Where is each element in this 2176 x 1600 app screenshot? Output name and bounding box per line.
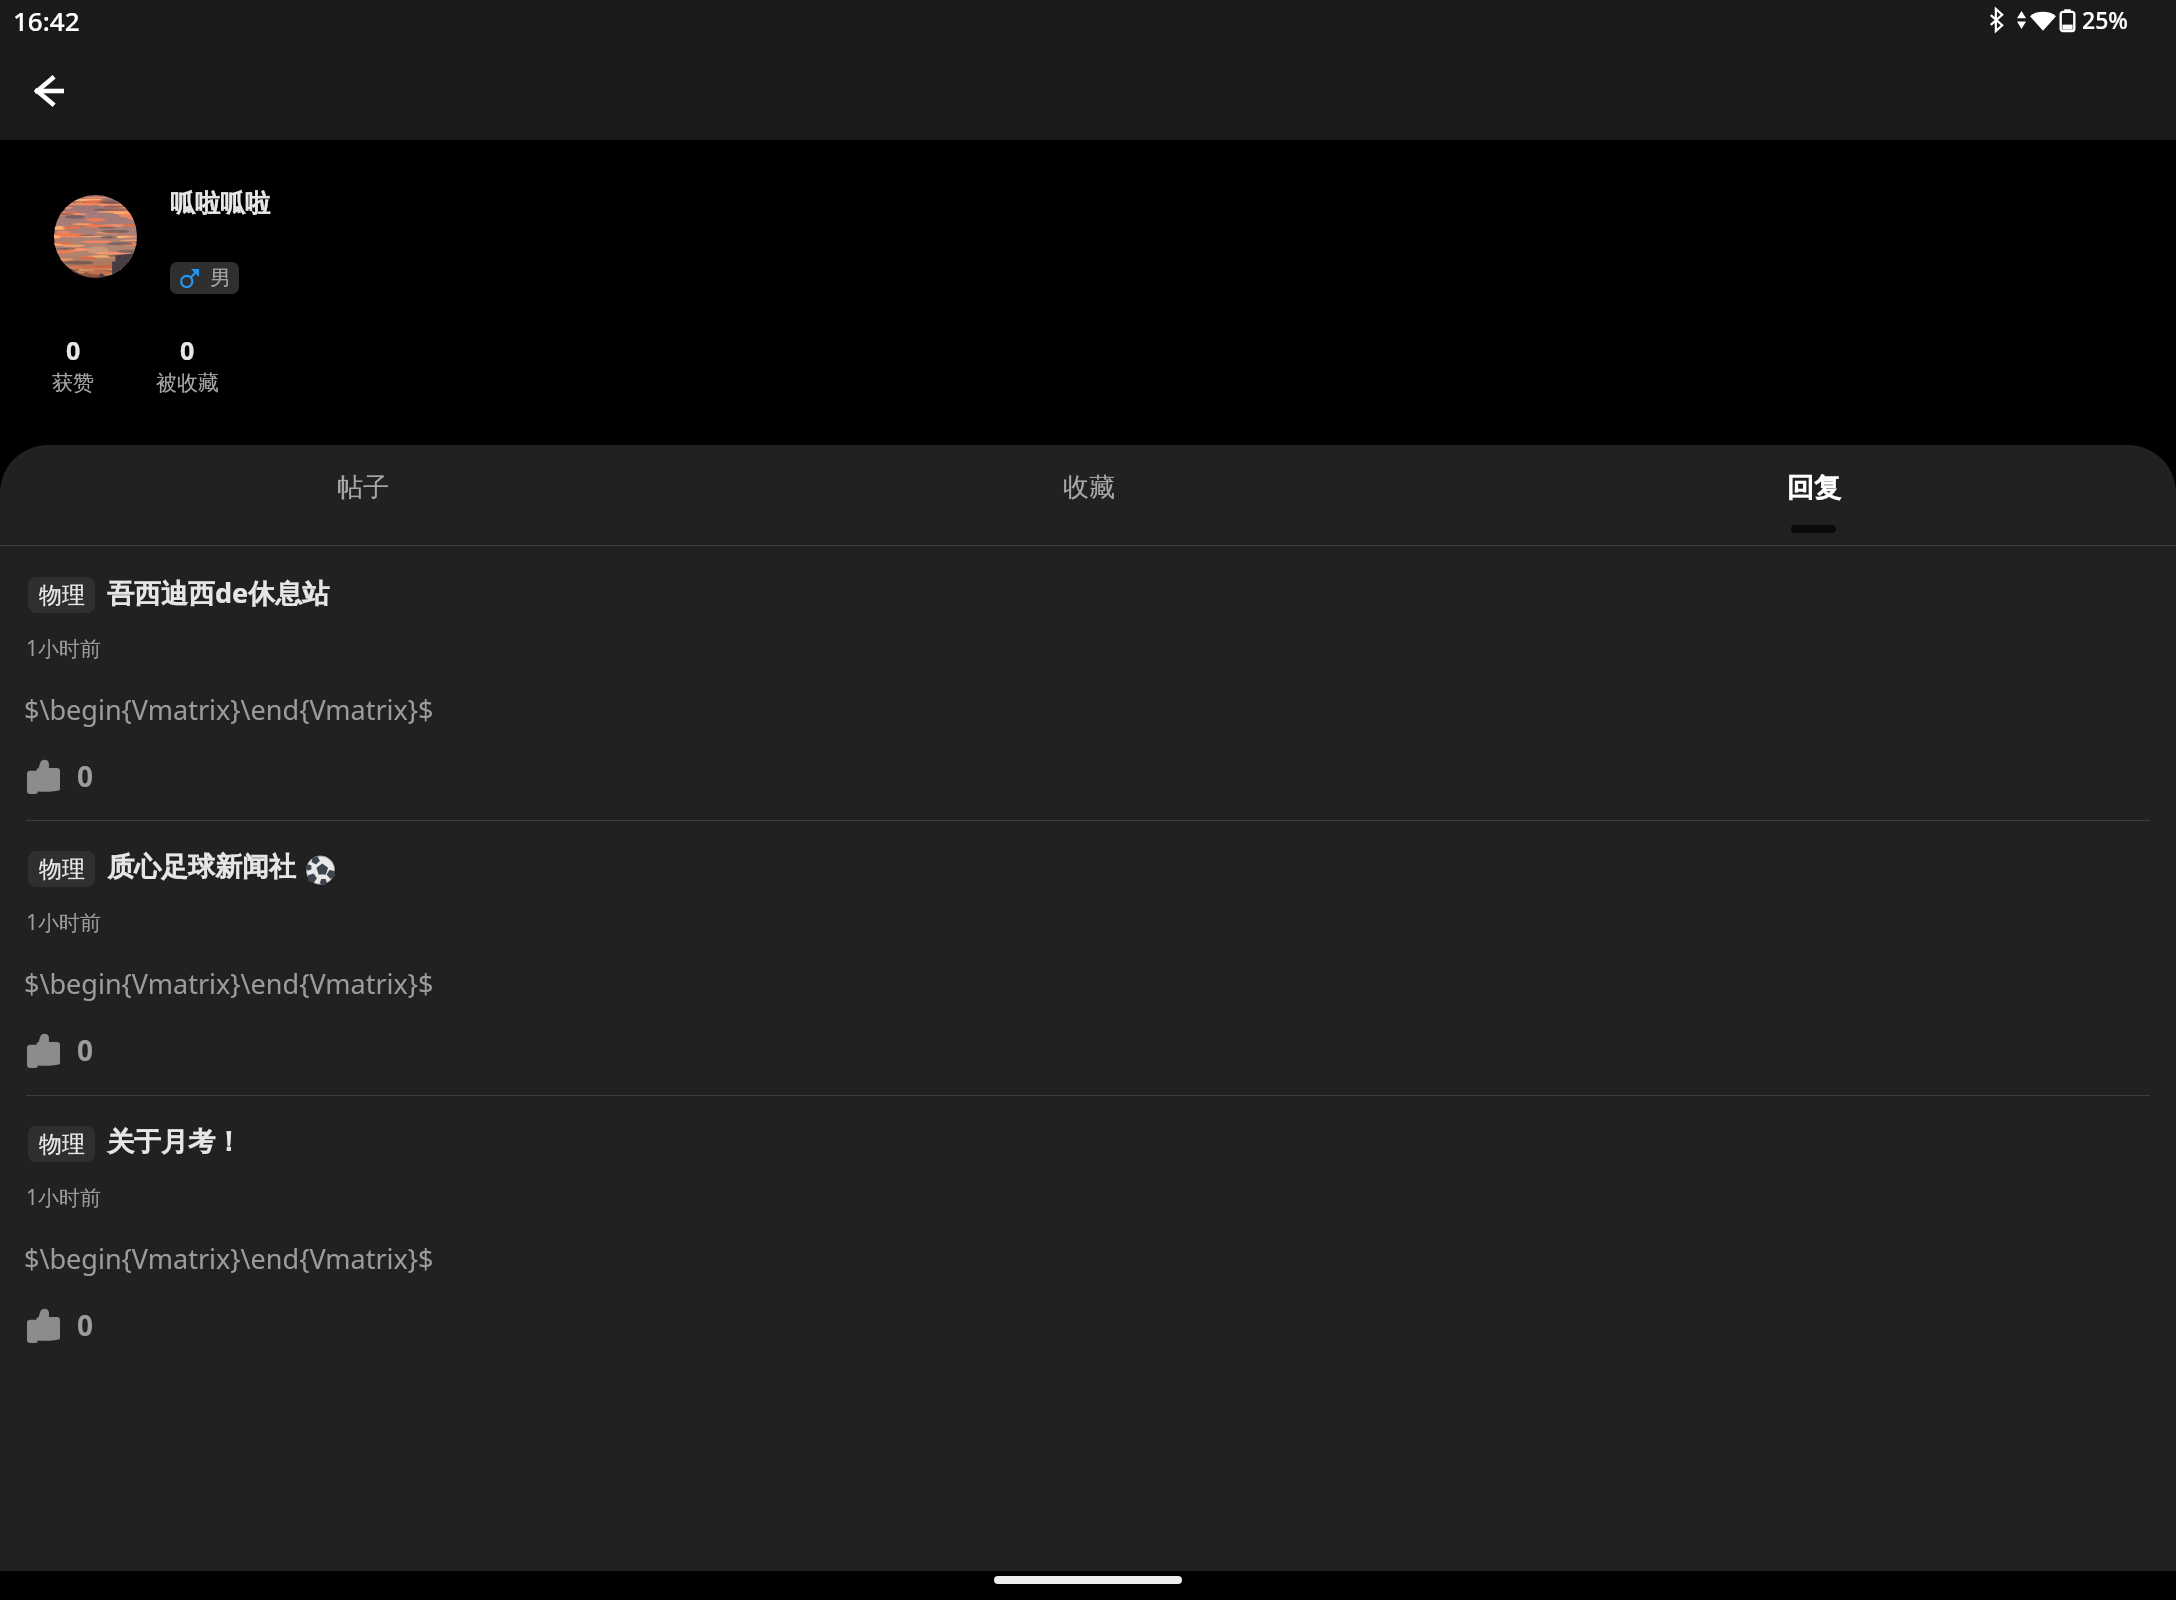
staticText: 1小时前 bbox=[26, 1183, 102, 1212]
staticText: 物理 bbox=[39, 855, 85, 884]
button[interactable]: 收藏 bbox=[726, 445, 1451, 545]
staticText: 获赞 bbox=[52, 370, 94, 396]
staticText: $\begin{Vmatrix}\end{Vmatrix}$ bbox=[24, 1240, 434, 1277]
button[interactable]: 帖子 bbox=[0, 445, 726, 545]
button[interactable]: Profile photo bbox=[54, 195, 137, 278]
staticText: 被收藏 bbox=[156, 370, 219, 396]
button[interactable]: 0 bbox=[27, 1031, 97, 1069]
staticText: 0 bbox=[180, 333, 195, 367]
staticText: 关于月考！ bbox=[107, 1125, 242, 1159]
staticText: 帖子 bbox=[337, 471, 389, 504]
staticText: $\begin{Vmatrix}\end{Vmatrix}$ bbox=[24, 691, 434, 728]
button[interactable]: 物理 bbox=[0, 821, 2176, 1095]
button[interactable]: 0 bbox=[27, 1306, 97, 1344]
button[interactable]: Back bbox=[21, 62, 78, 119]
staticText: 1小时前 bbox=[26, 634, 102, 663]
staticText: 质心足球新闻社 bbox=[107, 850, 296, 884]
staticText: 物理 bbox=[39, 1130, 85, 1159]
button[interactable]: 0 bbox=[27, 757, 97, 795]
button[interactable]: 物理 bbox=[0, 1096, 2176, 1370]
button[interactable]: 0 bbox=[131, 333, 243, 396]
staticText: 0 bbox=[66, 333, 81, 367]
staticText: 0 bbox=[77, 1306, 94, 1344]
staticText: 回复 bbox=[1787, 471, 1841, 505]
staticText: 吾西迪西de休息站 bbox=[107, 574, 330, 611]
staticText: 25% bbox=[2082, 4, 2128, 35]
staticText: 呱啦呱啦 bbox=[170, 188, 270, 219]
staticText: 16:42 bbox=[13, 3, 80, 38]
staticText: 收藏 bbox=[1063, 471, 1115, 504]
staticText: 0 bbox=[77, 1031, 94, 1069]
button[interactable]: 物理 bbox=[0, 546, 2176, 820]
staticText: 1小时前 bbox=[26, 908, 102, 937]
button[interactable]: 回复 bbox=[1451, 445, 2176, 545]
staticText: $\begin{Vmatrix}\end{Vmatrix}$ bbox=[24, 965, 434, 1002]
staticText: 0 bbox=[77, 757, 94, 795]
staticText: 男 bbox=[210, 265, 231, 291]
staticText: 物理 bbox=[39, 581, 85, 610]
button[interactable]: 男 bbox=[170, 262, 239, 294]
button[interactable]: 0 bbox=[17, 333, 129, 396]
